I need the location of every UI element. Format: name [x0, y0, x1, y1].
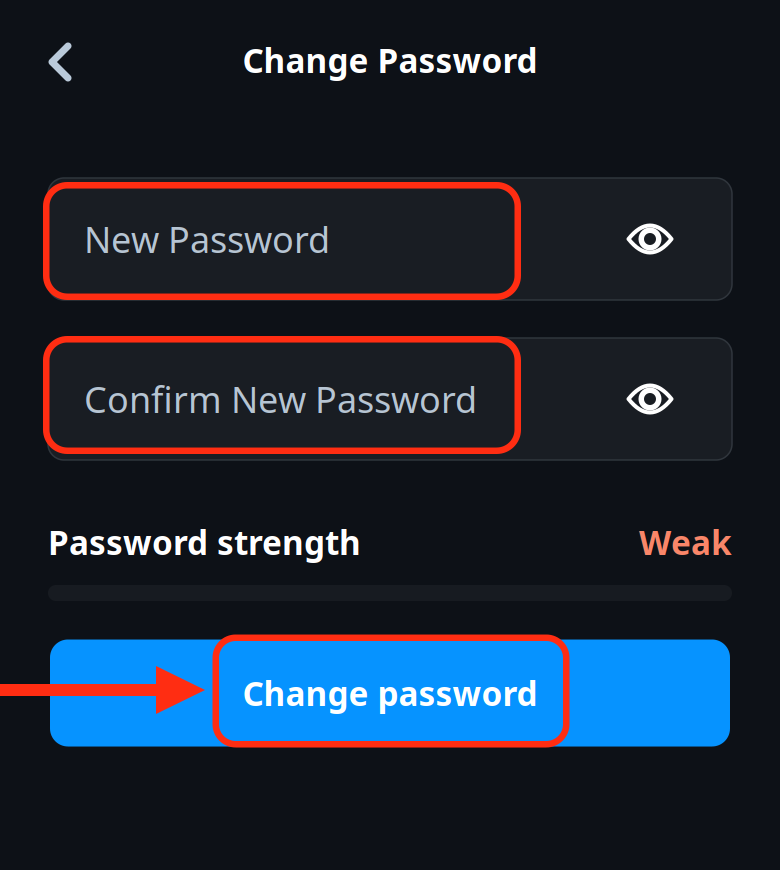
staticText: Password strength [48, 520, 361, 564]
staticText: Confirm New Password [84, 375, 477, 423]
button[interactable]: Show password [568, 178, 732, 300]
staticText: New Password [84, 215, 330, 263]
button[interactable]: Back [28, 30, 92, 94]
staticText: Change password [242, 671, 537, 715]
button[interactable]: Change password [50, 639, 730, 746]
staticText: Weak [639, 520, 732, 564]
button[interactable]: Show password [568, 338, 732, 460]
staticText: Change Password [242, 38, 537, 82]
